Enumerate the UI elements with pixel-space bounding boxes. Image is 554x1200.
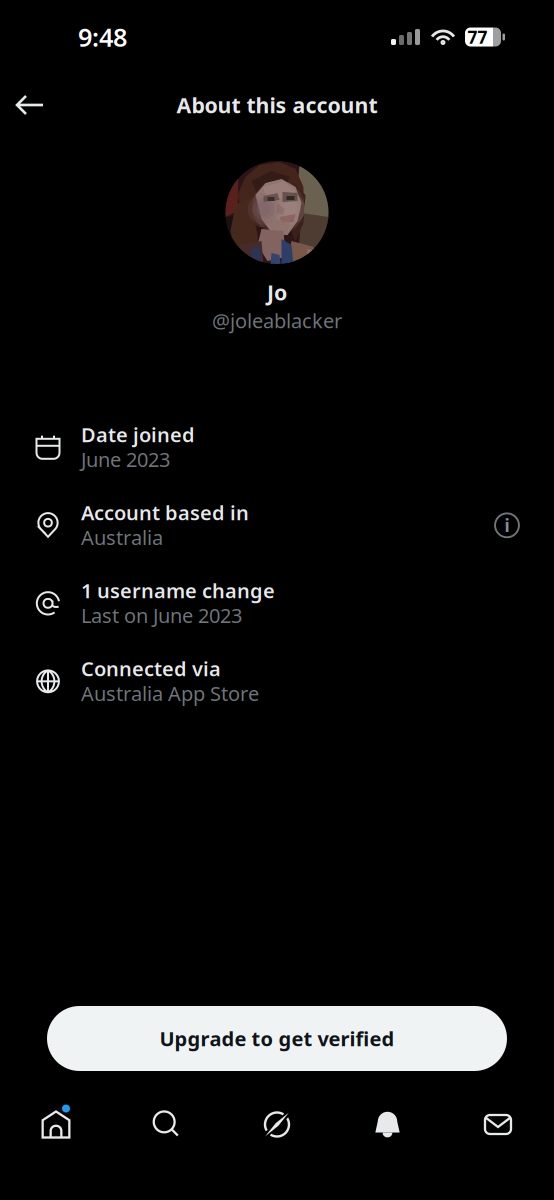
staticText: 9:48 <box>78 20 127 54</box>
staticText: Australia App Store <box>81 680 259 706</box>
staticText: i <box>504 514 509 537</box>
staticText: Connected via <box>81 655 221 682</box>
button[interactable]: Upgrade to get verified <box>47 1006 507 1071</box>
staticText: About this account <box>176 91 377 119</box>
staticText: Account based in <box>81 499 249 526</box>
staticText: Date joined <box>81 421 195 448</box>
button[interactable]: Grok <box>227 1093 327 1155</box>
button[interactable]: Notifications <box>337 1093 437 1155</box>
staticText: 1 username change <box>81 577 275 604</box>
staticText: Jo <box>267 278 287 306</box>
staticText: Upgrade to get verified <box>159 1025 394 1052</box>
staticText: @joleablacker <box>212 307 342 334</box>
button[interactable]: Home <box>6 1093 106 1155</box>
staticText: 77 <box>467 25 487 48</box>
staticText: June 2023 <box>81 446 170 472</box>
staticText: Australia <box>81 524 163 550</box>
button[interactable]: Search <box>116 1093 216 1155</box>
button[interactable]: Messages <box>448 1093 548 1155</box>
button[interactable]: About account location <box>494 499 543 538</box>
button[interactable]: Back <box>0 80 60 130</box>
staticText: Last on June 2023 <box>81 602 242 628</box>
